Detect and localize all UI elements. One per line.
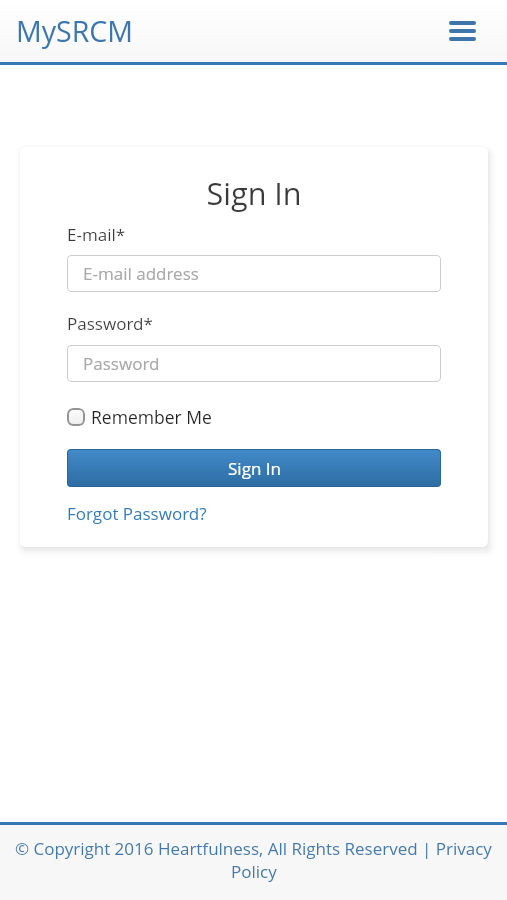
- staticText: E-mail*: [67, 223, 126, 246]
- button[interactable]: MySRCM: [16, 12, 134, 51]
- button[interactable]: Forgot Password?: [67, 502, 207, 525]
- staticText: Remember Me: [91, 405, 212, 429]
- button[interactable]: Password: [67, 345, 441, 382]
- staticText: Password*: [67, 312, 153, 335]
- button[interactable]: Sign In: [67, 449, 441, 487]
- button[interactable]: Remember Me: [67, 405, 212, 429]
- staticText: Password: [83, 352, 160, 375]
- button[interactable]: Policy: [231, 860, 277, 883]
- button[interactable]: [449, 21, 476, 41]
- staticText: Sign In: [228, 457, 281, 480]
- button[interactable]: E-mail address: [67, 255, 441, 292]
- button[interactable]: © Copyright 2016 Heartfulness, All Right…: [15, 837, 492, 860]
- staticText: E-mail address: [83, 262, 199, 285]
- staticText: Sign In: [67, 172, 441, 214]
